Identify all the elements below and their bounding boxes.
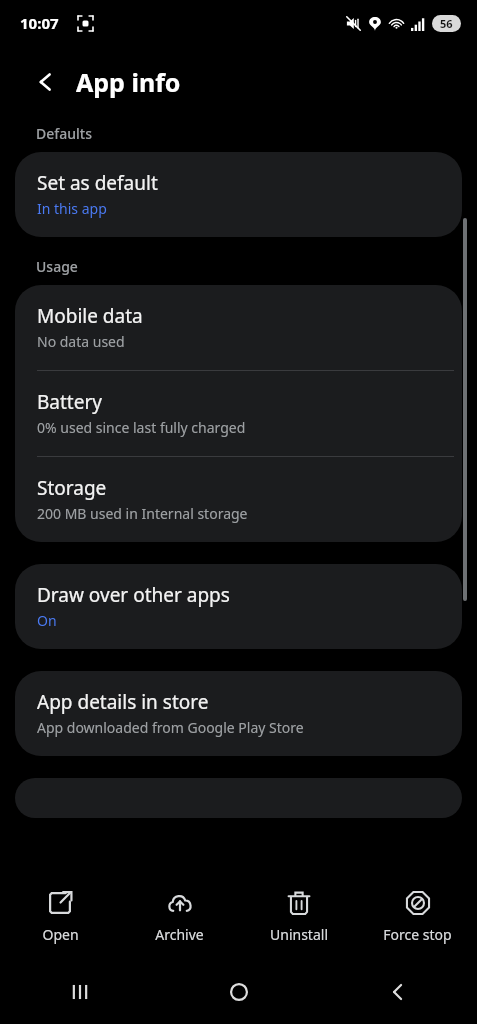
button[interactable]: Battery <box>15 371 462 456</box>
button[interactable]: Home <box>159 960 318 1024</box>
button[interactable]: Mobile data <box>15 285 462 370</box>
staticText: 10:07 <box>20 13 59 33</box>
staticText: Draw over other apps <box>37 582 230 608</box>
button[interactable] <box>15 778 462 818</box>
staticText: Mobile data <box>37 303 143 329</box>
button[interactable]: Uninstall <box>239 874 358 960</box>
button[interactable]: Back <box>318 960 477 1024</box>
staticText: Open <box>42 925 79 944</box>
button[interactable]: Back <box>26 62 66 102</box>
button[interactable]: Set as default <box>15 152 462 237</box>
staticText: Defaults <box>36 124 92 143</box>
staticText: Force stop <box>383 925 452 944</box>
staticText: Storage <box>37 475 107 501</box>
button[interactable]: Force stop <box>358 874 477 960</box>
staticText: 200 MB used in Internal storage <box>37 504 248 523</box>
staticText: Set as default <box>37 170 158 196</box>
button[interactable]: Draw over other apps <box>15 564 462 649</box>
staticText: On <box>37 611 57 630</box>
button[interactable]: Archive <box>120 874 239 960</box>
staticText: App info <box>76 65 181 99</box>
staticText: Archive <box>155 925 204 944</box>
staticText: App details in store <box>37 689 209 715</box>
staticText: Uninstall <box>270 925 328 944</box>
staticText: 0% used since last fully charged <box>37 418 246 437</box>
button[interactable]: App details in store <box>15 671 462 756</box>
staticText: 56 <box>440 16 453 31</box>
button[interactable]: Storage <box>15 457 462 542</box>
staticText: No data used <box>37 332 125 351</box>
staticText: Usage <box>36 257 78 276</box>
button[interactable]: Recents <box>0 960 159 1024</box>
staticText: App downloaded from Google Play Store <box>37 718 304 737</box>
button[interactable]: Open <box>0 874 120 960</box>
staticText: In this app <box>37 199 107 218</box>
staticText: Battery <box>37 389 102 415</box>
